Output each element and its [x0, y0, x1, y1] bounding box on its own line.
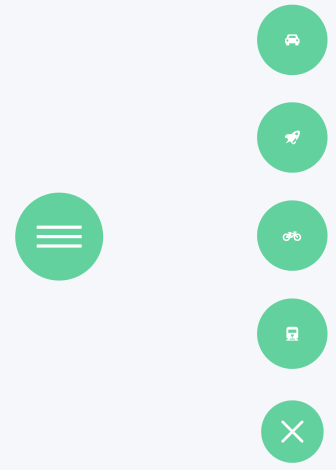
button[interactable]: Bicycle	[257, 200, 328, 271]
button[interactable]: Close menu	[261, 400, 324, 463]
button[interactable]: Rocket	[257, 102, 328, 173]
button[interactable]: Car	[257, 5, 328, 75]
button[interactable]: Train	[257, 298, 328, 369]
button[interactable]: Menu	[15, 193, 103, 281]
